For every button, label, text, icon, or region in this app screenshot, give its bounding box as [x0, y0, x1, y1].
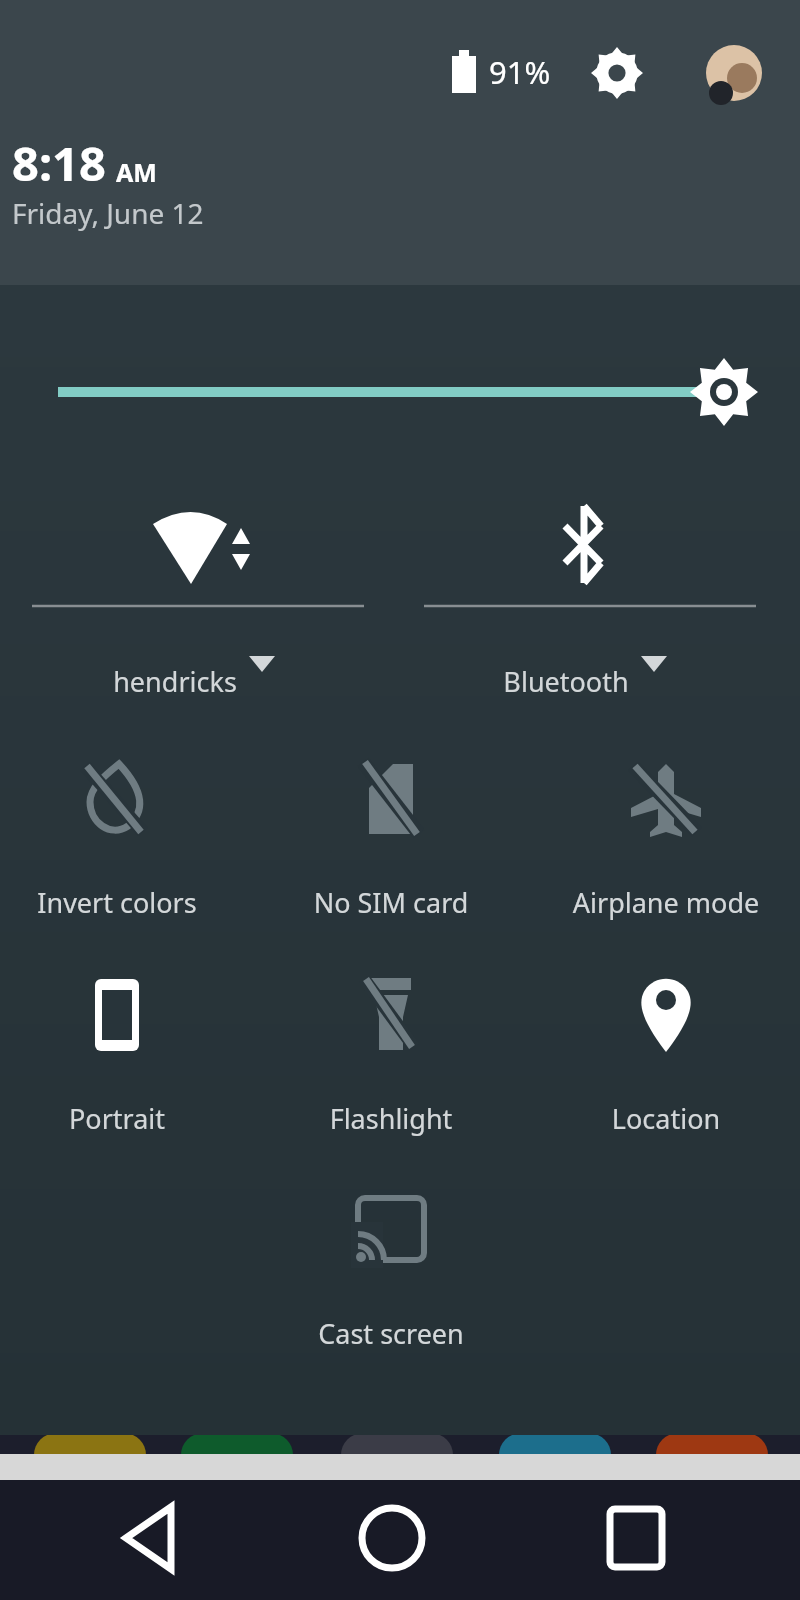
button[interactable]: User profile: [701, 40, 767, 106]
button[interactable]: Bluetooth: [412, 470, 757, 690]
staticText: AM: [116, 155, 157, 189]
button[interactable]: Back: [98, 1488, 198, 1588]
button[interactable]: Flashlight: [277, 975, 507, 1155]
button[interactable]: Location: [551, 975, 781, 1155]
button[interactable]: Invert colors: [20, 760, 250, 940]
button[interactable]: No SIM card: [277, 760, 507, 940]
staticText: Location: [526, 1100, 800, 1137]
staticText: Flashlight: [251, 1100, 531, 1137]
button[interactable]: Recent apps: [586, 1488, 686, 1588]
button[interactable]: Cast screen: [277, 1190, 507, 1370]
button[interactable]: Wi-Fi hendricks: [20, 470, 365, 690]
staticText: Portrait: [0, 1100, 257, 1137]
staticText: Airplane mode: [526, 884, 800, 921]
button[interactable]: Settings: [584, 40, 650, 106]
button[interactable]: Airplane mode: [551, 760, 781, 940]
staticText: 91%: [489, 51, 551, 93]
staticText: No SIM card: [251, 884, 531, 921]
staticText: hendricks: [35, 663, 315, 700]
staticText: Friday, June 12: [12, 194, 204, 232]
button[interactable]: Home: [342, 1488, 442, 1588]
button[interactable]: Portrait: [20, 975, 250, 1155]
staticText: Cast screen: [251, 1315, 531, 1352]
staticText: Bluetooth: [426, 663, 706, 700]
staticText: 8:18: [12, 131, 106, 195]
staticText: Invert colors: [0, 884, 257, 921]
button[interactable]: Brightness: [0, 360, 800, 430]
